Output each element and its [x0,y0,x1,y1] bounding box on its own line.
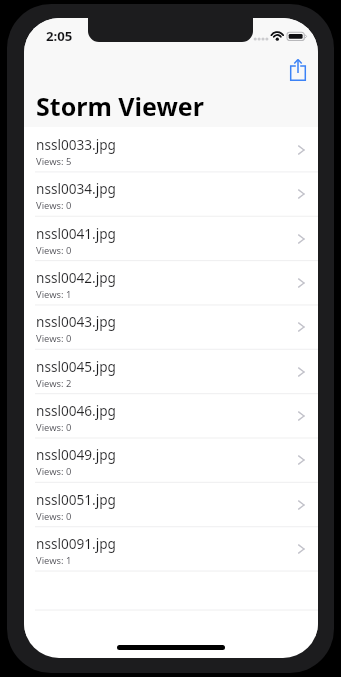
staticText: Storm Viewer [36,89,204,123]
button[interactable]: nssl0091.jpg [24,526,318,570]
staticText: Views: 0 [36,465,72,478]
staticText: Views: 5 [36,155,72,168]
staticText: nssl0051.jpg [36,490,116,509]
staticText: nssl0042.jpg [36,268,116,287]
button[interactable]: nssl0033.jpg [24,127,318,171]
staticText: nssl0091.jpg [36,534,116,553]
button[interactable]: nssl0043.jpg [24,304,318,348]
staticText: nssl0041.jpg [36,224,116,243]
staticText: Views: 1 [36,554,72,567]
staticText: 2:05 [46,27,73,45]
button[interactable]: nssl0051.jpg [24,482,318,526]
staticText: nssl0034.jpg [36,179,116,198]
button[interactable]: nssl0045.jpg [24,349,318,393]
button[interactable]: nssl0046.jpg [24,393,318,437]
button[interactable]: nssl0049.jpg [24,437,318,481]
button[interactable]: nssl0041.jpg [24,216,318,260]
staticText: Views: 2 [36,377,72,390]
staticText: Views: 0 [36,332,72,345]
staticText: nssl0046.jpg [36,401,116,420]
staticText: Views: 1 [36,288,72,301]
staticText: Views: 0 [36,421,72,434]
staticText: nssl0045.jpg [36,357,116,376]
button[interactable]: Share [281,55,315,85]
staticText: Views: 0 [36,199,72,212]
staticText: nssl0033.jpg [36,135,116,154]
staticText: Views: 0 [36,510,72,523]
button[interactable]: nssl0034.jpg [24,171,318,215]
staticText: nssl0049.jpg [36,445,116,464]
button[interactable]: nssl0042.jpg [24,260,318,304]
staticText: Views: 0 [36,244,72,257]
staticText: nssl0043.jpg [36,312,116,331]
